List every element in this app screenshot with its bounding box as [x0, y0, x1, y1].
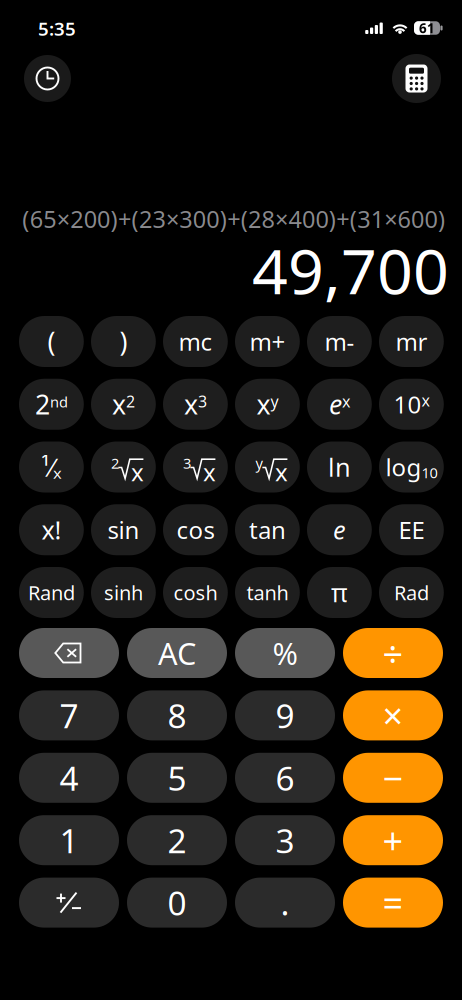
staticText: tanh [246, 579, 288, 606]
button[interactable]: ÷ [343, 628, 443, 678]
staticText: + [382, 816, 403, 864]
button[interactable]: mc [163, 316, 228, 367]
button[interactable]: 10x [379, 379, 444, 430]
button[interactable]: History [24, 55, 71, 102]
button[interactable]: Plus Minus [19, 878, 119, 928]
staticText: . [280, 880, 289, 925]
button[interactable]: x! [19, 504, 84, 555]
staticText: e [333, 513, 346, 546]
button[interactable]: 5 [127, 753, 227, 803]
staticText: EE [398, 514, 424, 546]
staticText: 0 [167, 880, 186, 925]
staticText: ln [328, 450, 351, 484]
button[interactable]: 8 [127, 690, 227, 740]
staticText: cosh [173, 579, 217, 606]
button[interactable]: π [307, 567, 372, 618]
button[interactable]: m+ [235, 316, 300, 367]
button[interactable]: − [343, 753, 443, 803]
staticText: sin [107, 514, 139, 546]
button[interactable]: Rad [379, 567, 444, 618]
button[interactable]: ex [307, 379, 372, 430]
staticText: 7 [59, 693, 78, 738]
staticText: Rad [394, 579, 429, 606]
button[interactable]: tanh [235, 567, 300, 618]
button[interactable]: e [307, 504, 372, 555]
button[interactable]: 2 [127, 815, 227, 865]
button[interactable]: ) [91, 316, 156, 367]
button[interactable]: Calculator Mode [392, 54, 441, 103]
staticText: ex [329, 386, 350, 422]
button[interactable]: x3 [163, 379, 228, 430]
staticText: ) [119, 324, 127, 359]
staticText: 2nd [35, 386, 68, 422]
button[interactable]: AC [127, 628, 227, 678]
button[interactable]: tan [235, 504, 300, 555]
button[interactable]: 4 [19, 753, 119, 803]
staticText: ÷ [382, 629, 403, 677]
staticText: m- [324, 326, 354, 357]
button[interactable]: EE [379, 504, 444, 555]
staticText: 49,700 [252, 227, 449, 313]
staticText: (65×200)+(23×300)+(28×400)+(31×600) [22, 203, 445, 235]
staticText: 3 [183, 453, 191, 473]
button[interactable]: y [235, 441, 300, 492]
button[interactable]: Rand [19, 567, 84, 618]
staticText: − [382, 754, 403, 802]
staticText: x! [41, 513, 61, 546]
button[interactable]: 6 [235, 753, 335, 803]
staticText: y [255, 453, 262, 473]
button[interactable]: xy [235, 379, 300, 430]
staticText: x [275, 456, 288, 488]
button[interactable]: ¹⁄ₓ [19, 441, 84, 492]
button[interactable]: x2 [91, 379, 156, 430]
staticText: 1 [59, 818, 78, 862]
staticText: ( [47, 324, 55, 359]
staticText: mc [178, 326, 212, 357]
button[interactable]: mr [379, 316, 444, 367]
staticText: 61 [419, 19, 435, 37]
button[interactable]: sin [91, 504, 156, 555]
button[interactable]: 3 [235, 815, 335, 865]
button[interactable]: 3 [163, 441, 228, 492]
button[interactable]: + [343, 815, 443, 865]
staticText: 5 [167, 756, 186, 800]
staticText: log10 [385, 451, 437, 483]
staticText: mr [395, 326, 427, 357]
button[interactable]: = [343, 878, 443, 928]
button[interactable]: cos [163, 504, 228, 555]
staticText: x3 [184, 386, 207, 422]
staticText: 10x [393, 388, 429, 420]
button[interactable]: % [235, 628, 335, 678]
button[interactable]: 2nd [19, 379, 84, 430]
button[interactable]: Delete [19, 628, 119, 678]
button[interactable]: 1 [19, 815, 119, 865]
staticText: 6 [275, 756, 294, 800]
staticText: 3 [275, 818, 294, 862]
staticText: 8 [167, 693, 186, 738]
staticText: 5:35 [38, 16, 76, 41]
staticText: xy [256, 386, 278, 422]
button[interactable]: cosh [163, 567, 228, 618]
button[interactable]: 2 [91, 441, 156, 492]
staticText: m+ [249, 326, 285, 357]
button[interactable]: 7 [19, 690, 119, 740]
staticText: x2 [112, 386, 135, 422]
staticText: cos [176, 514, 214, 546]
button[interactable]: ln [307, 441, 372, 492]
button[interactable]: 9 [235, 690, 335, 740]
staticText: tan [249, 514, 286, 546]
button[interactable]: 0 [127, 878, 227, 928]
button[interactable]: sinh [91, 567, 156, 618]
staticText: 9 [275, 693, 294, 738]
button[interactable]: . [235, 878, 335, 928]
button[interactable]: × [343, 690, 443, 740]
staticText: = [382, 879, 403, 926]
staticText: 2 [111, 453, 119, 473]
button[interactable]: m- [307, 316, 372, 367]
staticText: % [272, 633, 297, 673]
staticText: 2 [167, 818, 186, 862]
staticText: x [131, 456, 144, 488]
staticText: π [331, 576, 348, 609]
button[interactable]: log10 [379, 441, 444, 492]
button[interactable]: ( [19, 316, 84, 367]
